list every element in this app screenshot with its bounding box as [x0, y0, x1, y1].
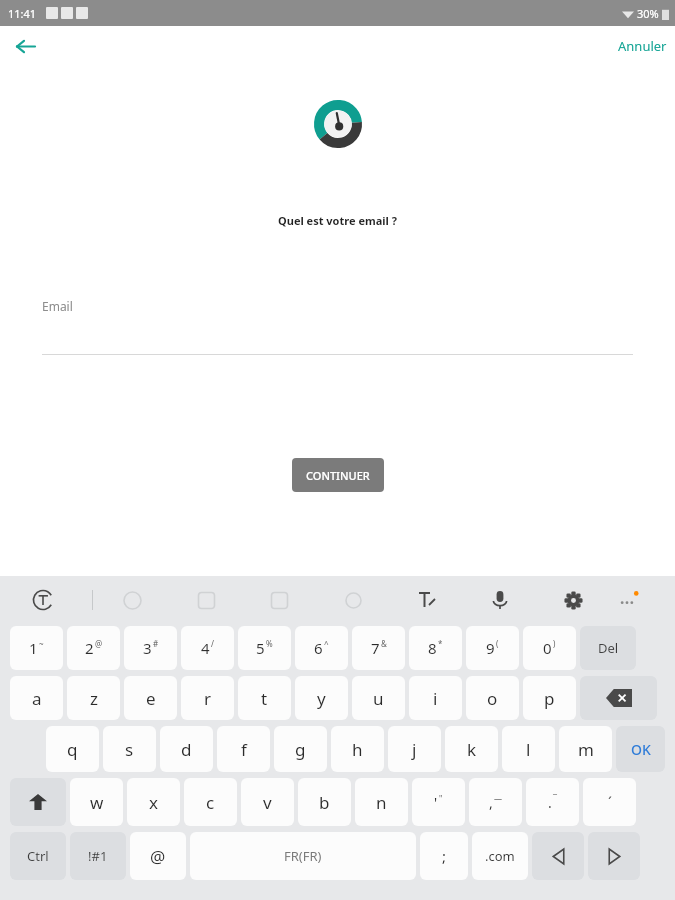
button[interactable]: FR(FR) [190, 832, 416, 880]
staticText: 3 [143, 638, 152, 658]
staticText: c [206, 791, 215, 814]
button[interactable]: 4 [181, 626, 234, 670]
button[interactable]: Tool 3 [262, 583, 296, 617]
staticText: Ctrl [27, 847, 49, 865]
button[interactable]: Backspace [580, 676, 657, 720]
staticText: 5 [256, 638, 265, 658]
staticText: 30% [637, 6, 659, 21]
staticText: % [266, 638, 273, 649]
button[interactable]: l [502, 726, 555, 772]
button[interactable]: .com [472, 832, 528, 880]
button[interactable]: Del [580, 626, 636, 670]
button[interactable]: Ctrl [10, 832, 66, 880]
button[interactable]: q [46, 726, 99, 772]
button[interactable]: , [469, 778, 522, 826]
button[interactable]: 0 [523, 626, 576, 670]
button[interactable]: t [238, 676, 291, 720]
button[interactable]: o [466, 676, 519, 720]
button[interactable]: h [331, 726, 384, 772]
staticText: k [467, 738, 477, 761]
button[interactable]: y [295, 676, 348, 720]
button[interactable]: Tool 2 [189, 583, 223, 617]
staticText: Email [42, 298, 73, 314]
button[interactable]: 8 [409, 626, 462, 670]
button[interactable]: Text style [410, 583, 444, 617]
button[interactable]: i [409, 676, 462, 720]
button[interactable]: z [67, 676, 120, 720]
staticText: Quel est votre email ? [0, 213, 675, 228]
button[interactable]: j [388, 726, 441, 772]
button[interactable]: s [103, 726, 156, 772]
button[interactable]: 5 [238, 626, 291, 670]
button[interactable]: g [274, 726, 327, 772]
button[interactable]: d [160, 726, 213, 772]
staticText: @ [150, 845, 166, 868]
button[interactable]: b [298, 778, 351, 826]
staticText: f [241, 738, 247, 761]
button[interactable]: ' [412, 778, 465, 826]
button[interactable]: u [352, 676, 405, 720]
staticText: e [146, 687, 156, 710]
button[interactable]: Left [532, 832, 584, 880]
button[interactable]: a [10, 676, 63, 720]
button[interactable]: Voice input [483, 583, 517, 617]
button[interactable]: OK [616, 726, 665, 772]
button[interactable]: f [217, 726, 270, 772]
button[interactable]: w [70, 778, 123, 826]
staticText: l [526, 738, 531, 761]
staticText: ( [496, 638, 499, 649]
staticText: 6 [314, 638, 323, 658]
staticText: @ [95, 638, 103, 649]
button[interactable]: 7 [352, 626, 405, 670]
button[interactable]: ´ [583, 778, 636, 826]
button[interactable]: Back [8, 29, 42, 63]
staticText: 4 [201, 638, 210, 658]
staticText: u [373, 687, 384, 710]
staticText: a [32, 687, 42, 710]
button[interactable]: m [559, 726, 612, 772]
button[interactable]: CONTINUER [292, 458, 384, 492]
button[interactable]: More options [610, 583, 644, 617]
staticText: b [319, 791, 330, 814]
staticText: 8 [428, 638, 437, 658]
button[interactable]: @ [130, 832, 186, 880]
button[interactable]: v [241, 778, 294, 826]
button[interactable]: p [523, 676, 576, 720]
staticText: d [181, 738, 192, 761]
button[interactable]: 2 [67, 626, 120, 670]
staticText: z [90, 687, 98, 710]
staticText: CONTINUER [306, 468, 370, 483]
staticText: # [153, 638, 159, 649]
staticText: " [439, 793, 443, 804]
button[interactable]: Translate [26, 583, 60, 617]
button[interactable]: c [184, 778, 237, 826]
button[interactable]: k [445, 726, 498, 772]
staticText: ‾ [553, 793, 557, 804]
button[interactable]: 3 [124, 626, 177, 670]
staticText: ' [434, 793, 438, 812]
button[interactable]: . [526, 778, 579, 826]
button[interactable]: 6 [295, 626, 348, 670]
button[interactable]: Right [588, 832, 640, 880]
button[interactable]: Keyboard settings [556, 583, 590, 617]
button[interactable]: Annuler [610, 31, 675, 61]
staticText: g [295, 738, 306, 761]
button[interactable]: r [181, 676, 234, 720]
button[interactable]: 9 [466, 626, 519, 670]
button[interactable]: n [355, 778, 408, 826]
button[interactable]: ; [420, 832, 468, 880]
button[interactable]: !#1 [70, 832, 126, 880]
staticText: r [204, 687, 212, 710]
staticText: p [544, 687, 555, 710]
staticText: o [487, 687, 498, 710]
staticText: q [67, 738, 78, 761]
button[interactable]: x [127, 778, 180, 826]
button[interactable]: e [124, 676, 177, 720]
button[interactable]: Tool 1 [115, 583, 149, 617]
staticText: ^ [324, 638, 329, 649]
staticText: ´ [608, 793, 612, 812]
button[interactable]: Shift [10, 778, 66, 826]
staticText: & [381, 638, 387, 649]
button[interactable]: 1 [10, 626, 63, 670]
button[interactable]: Tool 4 [336, 583, 370, 617]
